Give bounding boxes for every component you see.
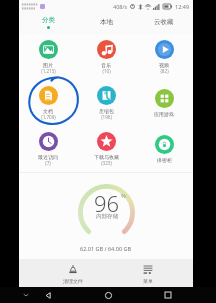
button[interactable]: 音乐 [77,34,135,80]
button[interactable]: 云收藏 [135,13,193,34]
staticText: 云收藏 [154,18,174,26]
staticText: (82) [160,68,169,74]
staticText: 下载与收藏 [94,154,119,160]
staticText: 压缩包 [99,108,114,114]
button[interactable]: 下载与收藏 [77,126,135,172]
button[interactable]: 压缩包 [77,80,135,126]
staticText: (10) [102,68,111,74]
button[interactable]: 保密柜 [135,126,193,172]
button[interactable]: Home [102,289,114,301]
staticText: 图片 [43,62,53,68]
button[interactable]: 最近访问 [19,126,77,172]
staticText: (7) [45,160,51,166]
staticText: (196) [101,114,112,120]
button[interactable]: Back [42,289,54,301]
staticText: 菜单 [143,278,153,284]
staticText: 内部存储 [96,213,118,220]
staticText: 本地 [100,18,113,26]
staticText: (1,709) [41,114,56,120]
staticText: 视频 [159,62,169,68]
staticText: 12:49 [175,3,190,10]
staticText: (1,215) [41,68,56,74]
button[interactable]: 图片 [19,34,77,80]
staticText: (323) [101,160,112,166]
button[interactable]: 分类 [19,13,77,34]
button[interactable]: 应用游戏 [135,80,193,126]
staticText: % [121,192,126,200]
button[interactable]: 视频 [135,34,193,80]
staticText: 保密柜 [157,157,172,163]
staticText: 音乐 [101,62,111,68]
button[interactable]: 本地 [77,13,135,34]
button[interactable]: Recent apps [162,289,174,301]
staticText: 应用游戏 [154,111,174,117]
staticText: 清理文件 [63,278,83,284]
button[interactable]: 清理文件 [35,259,110,287]
staticText: 最近访问 [38,154,58,160]
staticText: 文档 [43,108,53,114]
button[interactable]: 文档 [19,80,77,126]
button[interactable]: 菜单 [110,259,185,287]
staticText: 96 [94,188,120,218]
staticText: 分类 [42,16,55,24]
button[interactable]: Hide navigation bar [22,291,30,299]
staticText: 62.01 GB / 64.00 GB [80,245,132,252]
staticText: 408/s [113,3,128,10]
